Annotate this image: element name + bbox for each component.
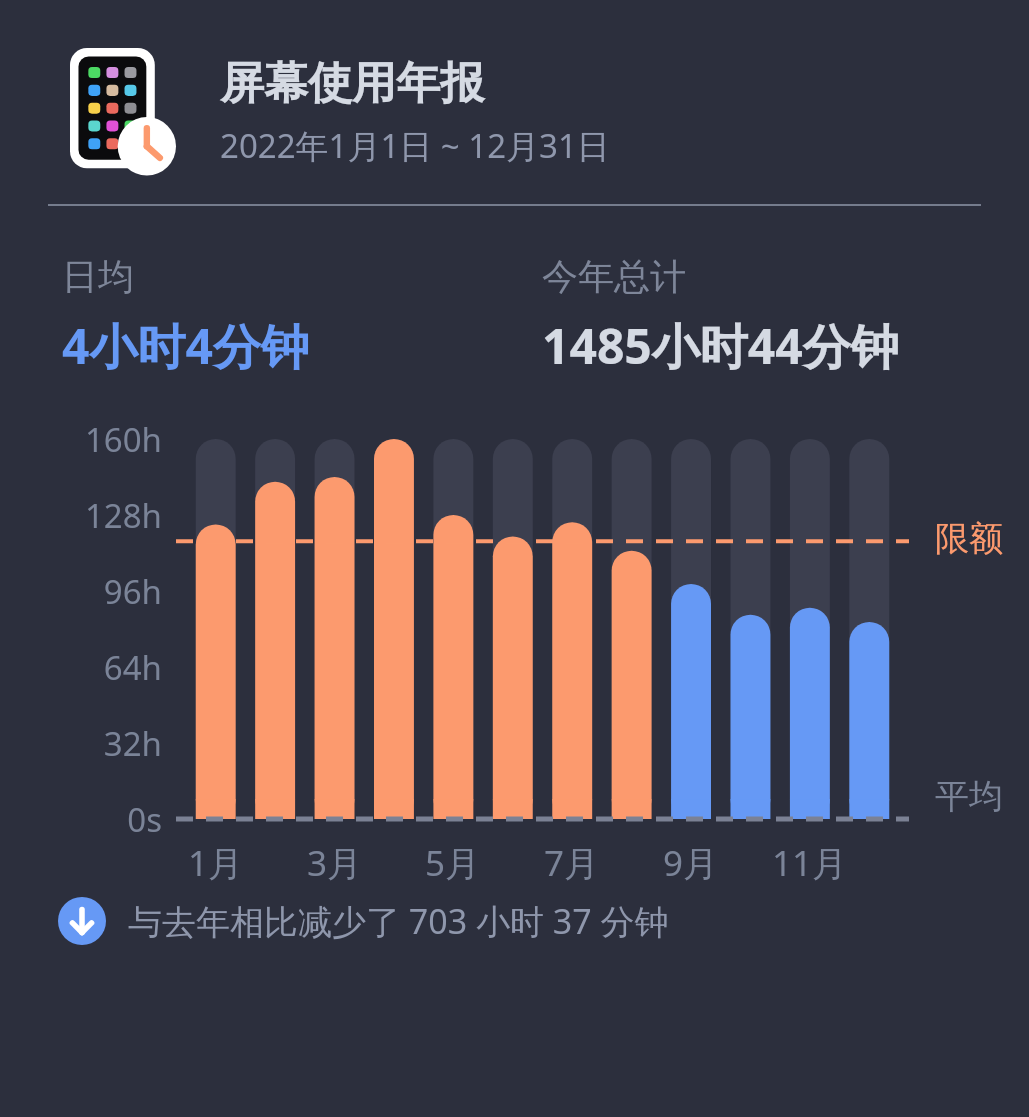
staticText: 4小时4分钟	[62, 313, 309, 379]
button[interactable]: 屏幕使用时间	[70, 48, 989, 176]
staticText: 屏幕使用年报	[220, 56, 484, 111]
staticText: 与去年相比减少了 703 小时 37 分钟	[128, 898, 669, 944]
staticText: 160h	[0, 417, 162, 462]
staticText: 128h	[0, 493, 162, 538]
staticText: 平均	[935, 775, 1003, 818]
button[interactable]: 减少	[58, 897, 106, 945]
button[interactable]: 今年总计	[542, 254, 1005, 379]
staticText: 限额	[935, 517, 1003, 560]
staticText: 0s	[0, 797, 162, 842]
staticText: 96h	[0, 569, 162, 614]
staticText: 3月	[307, 839, 363, 887]
staticText: 今年总计	[542, 254, 686, 299]
staticText: 5月	[425, 839, 481, 887]
button[interactable]: 减少	[58, 897, 989, 945]
staticText: 32h	[0, 721, 162, 766]
button[interactable]: 日均	[62, 254, 542, 379]
staticText: 7月	[544, 839, 600, 887]
staticText: 9月	[663, 839, 719, 887]
button[interactable]: 屏幕使用时间	[70, 48, 176, 176]
staticText: 2022年1月1日 ~ 12月31日	[220, 123, 610, 168]
staticText: 11月	[772, 839, 848, 887]
staticText: 日均	[62, 254, 134, 299]
staticText: 1485小时44分钟	[542, 313, 899, 379]
staticText: 64h	[0, 645, 162, 690]
staticText: 1月	[188, 839, 244, 887]
